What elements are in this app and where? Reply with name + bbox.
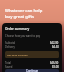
button[interactable]: Total — [5, 61, 59, 65]
staticText: Total — [5, 61, 11, 65]
staticText: $4.50 — [52, 45, 59, 49]
button[interactable]: Delivery — [5, 45, 59, 49]
staticText: Gift wrap included — [7, 53, 28, 56]
staticText: $3.00 — [52, 65, 59, 69]
staticText: Delivery — [5, 45, 15, 49]
staticText: buy great gifts — [5, 14, 35, 20]
staticText: Choose how you want to pay — [5, 34, 41, 38]
button[interactable]: Subtotal — [5, 41, 59, 45]
staticText: Subtotal — [5, 41, 16, 45]
staticText: Order summary — [5, 27, 30, 31]
button[interactable]: Saved — [5, 65, 59, 69]
button[interactable]: Gift wrap included — [5, 51, 59, 58]
button[interactable]: Continue — [5, 69, 59, 72]
staticText: $46.50 — [50, 61, 59, 65]
staticText: Whatever can help — [5, 8, 43, 14]
staticText: Saved — [5, 65, 13, 69]
staticText: Continue — [26, 69, 38, 72]
staticText: $42.00 — [50, 41, 59, 45]
